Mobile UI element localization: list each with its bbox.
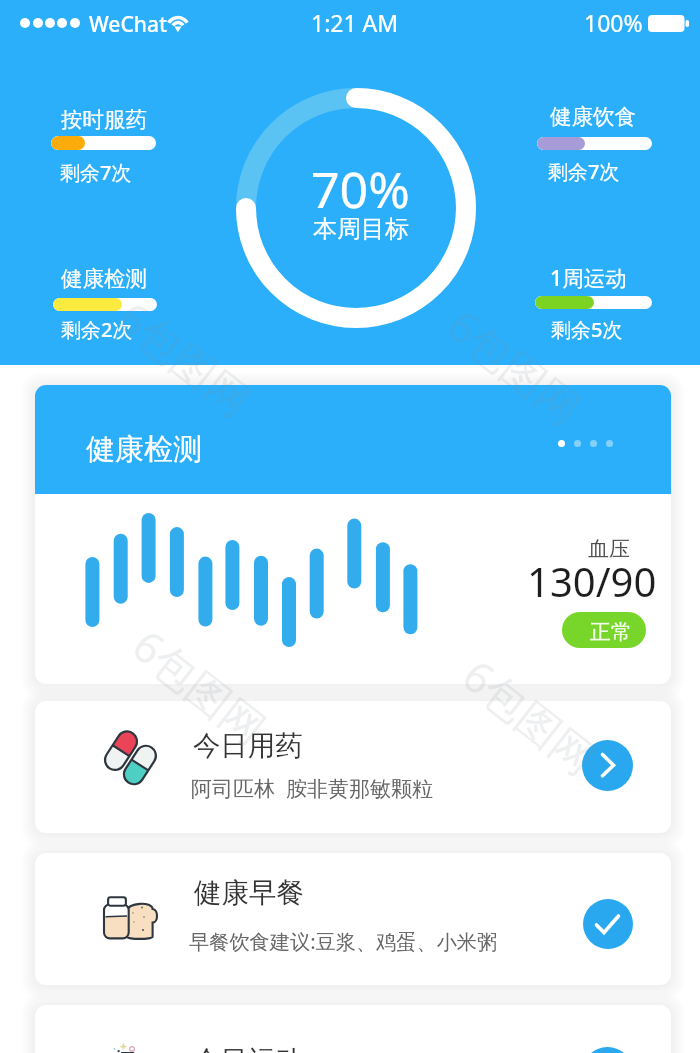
staticText: 健康早餐 xyxy=(194,876,304,911)
staticText: 1:21 AM xyxy=(311,7,399,38)
staticText: 本周目标 xyxy=(313,214,409,244)
staticText: 剩余7次 xyxy=(60,159,132,186)
button[interactable]: Open today's exercise xyxy=(582,1047,633,1053)
staticText: 正常 xyxy=(590,619,632,645)
staticText: 今日运动 xyxy=(193,1044,303,1053)
staticText: 1周运动 xyxy=(550,263,627,292)
staticText: 70% xyxy=(311,155,410,223)
button[interactable]: Open today's medication xyxy=(582,740,633,791)
staticText: 剩余7次 xyxy=(548,158,620,185)
staticText: 剩余2次 xyxy=(61,316,133,343)
staticText: 6包图网 xyxy=(121,616,279,757)
staticText: 健康饮食 xyxy=(550,103,636,130)
staticText: 早餐饮食建议:豆浆、鸡蛋、小米粥 xyxy=(189,927,498,955)
staticText: 血压 xyxy=(588,536,630,562)
staticText: 阿司匹林 胺非黄那敏颗粒 xyxy=(191,774,433,803)
button[interactable]: 今日用药 xyxy=(35,701,671,833)
button[interactable]: 健康检测 xyxy=(35,385,671,684)
staticText: 健康检测 xyxy=(61,265,147,292)
staticText: 6包图网 xyxy=(436,296,594,437)
staticText: 130/90 xyxy=(527,554,657,608)
staticText: 100% xyxy=(584,7,643,38)
button[interactable]: 今日运动 xyxy=(35,1005,671,1053)
staticText: 剩余5次 xyxy=(551,316,623,343)
staticText: 今日用药 xyxy=(193,729,303,764)
button[interactable]: Breakfast completed xyxy=(583,899,633,949)
staticText: 按时服药 xyxy=(61,106,147,133)
staticText: 健康检测 xyxy=(86,431,202,468)
staticText: 6包图网 xyxy=(106,288,264,429)
staticText: WeChat xyxy=(89,10,167,39)
staticText: 6包图网 xyxy=(451,646,609,787)
button[interactable]: 健康早餐 xyxy=(35,853,671,985)
